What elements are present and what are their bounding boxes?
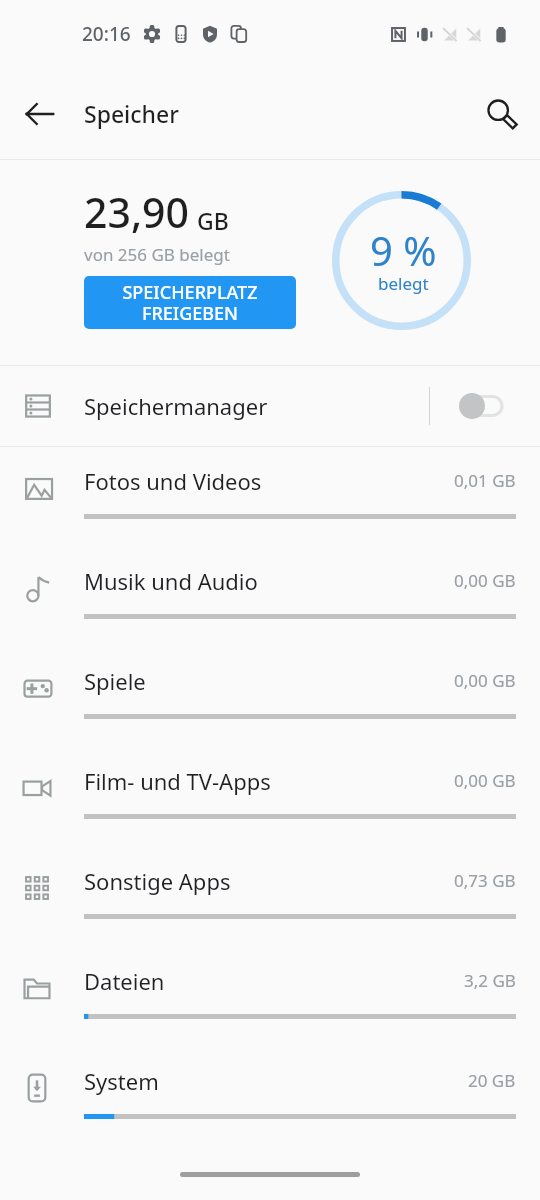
staticText: von 256 GB belegt [84,243,230,266]
button[interactable]: Speichermanager Schalter [450,379,512,433]
staticText: Sonstige Apps [84,866,231,896]
staticText: Musik und Audio [84,566,258,596]
staticText: Fotos und Videos [84,466,262,496]
staticText: 3,2 GB [464,969,516,992]
staticText: belegt [378,272,429,295]
button[interactable]: Back [11,85,69,143]
button[interactable]: Speichermanager [0,366,540,446]
button[interactable]: System [0,1047,540,1147]
staticText: 0,01 GB [454,469,516,492]
button[interactable]: Sonstige Apps [0,847,540,947]
staticText: System [84,1066,159,1096]
button[interactable]: Search [472,85,530,143]
staticText: 9 % [370,223,437,277]
staticText: Speichermanager [84,391,268,421]
staticText: 20:16 [82,21,131,47]
button[interactable]: Film- und TV-Apps [0,747,540,847]
button[interactable]: Dateien [0,947,540,1047]
staticText: GB [197,205,229,236]
staticText: 0,00 GB [454,569,516,592]
button[interactable]: Musik und Audio [0,547,540,647]
staticText: Spiele [84,666,146,696]
staticText: Dateien [84,966,165,996]
button[interactable]: SPEICHERPLATZ FREIGEBEN [84,276,296,329]
staticText: SPEICHERPLATZ FREIGEBEN [122,280,258,326]
staticText: 0,00 GB [454,769,516,792]
button[interactable]: Fotos und Videos [0,447,540,547]
staticText: 0,00 GB [454,669,516,692]
staticText: Film- und TV-Apps [84,766,271,796]
button[interactable]: Spiele [0,647,540,747]
staticText: 23,90 [84,184,190,240]
staticText: 20 GB [468,1069,516,1092]
staticText: 0,73 GB [454,869,516,892]
staticText: Speicher [84,98,179,129]
